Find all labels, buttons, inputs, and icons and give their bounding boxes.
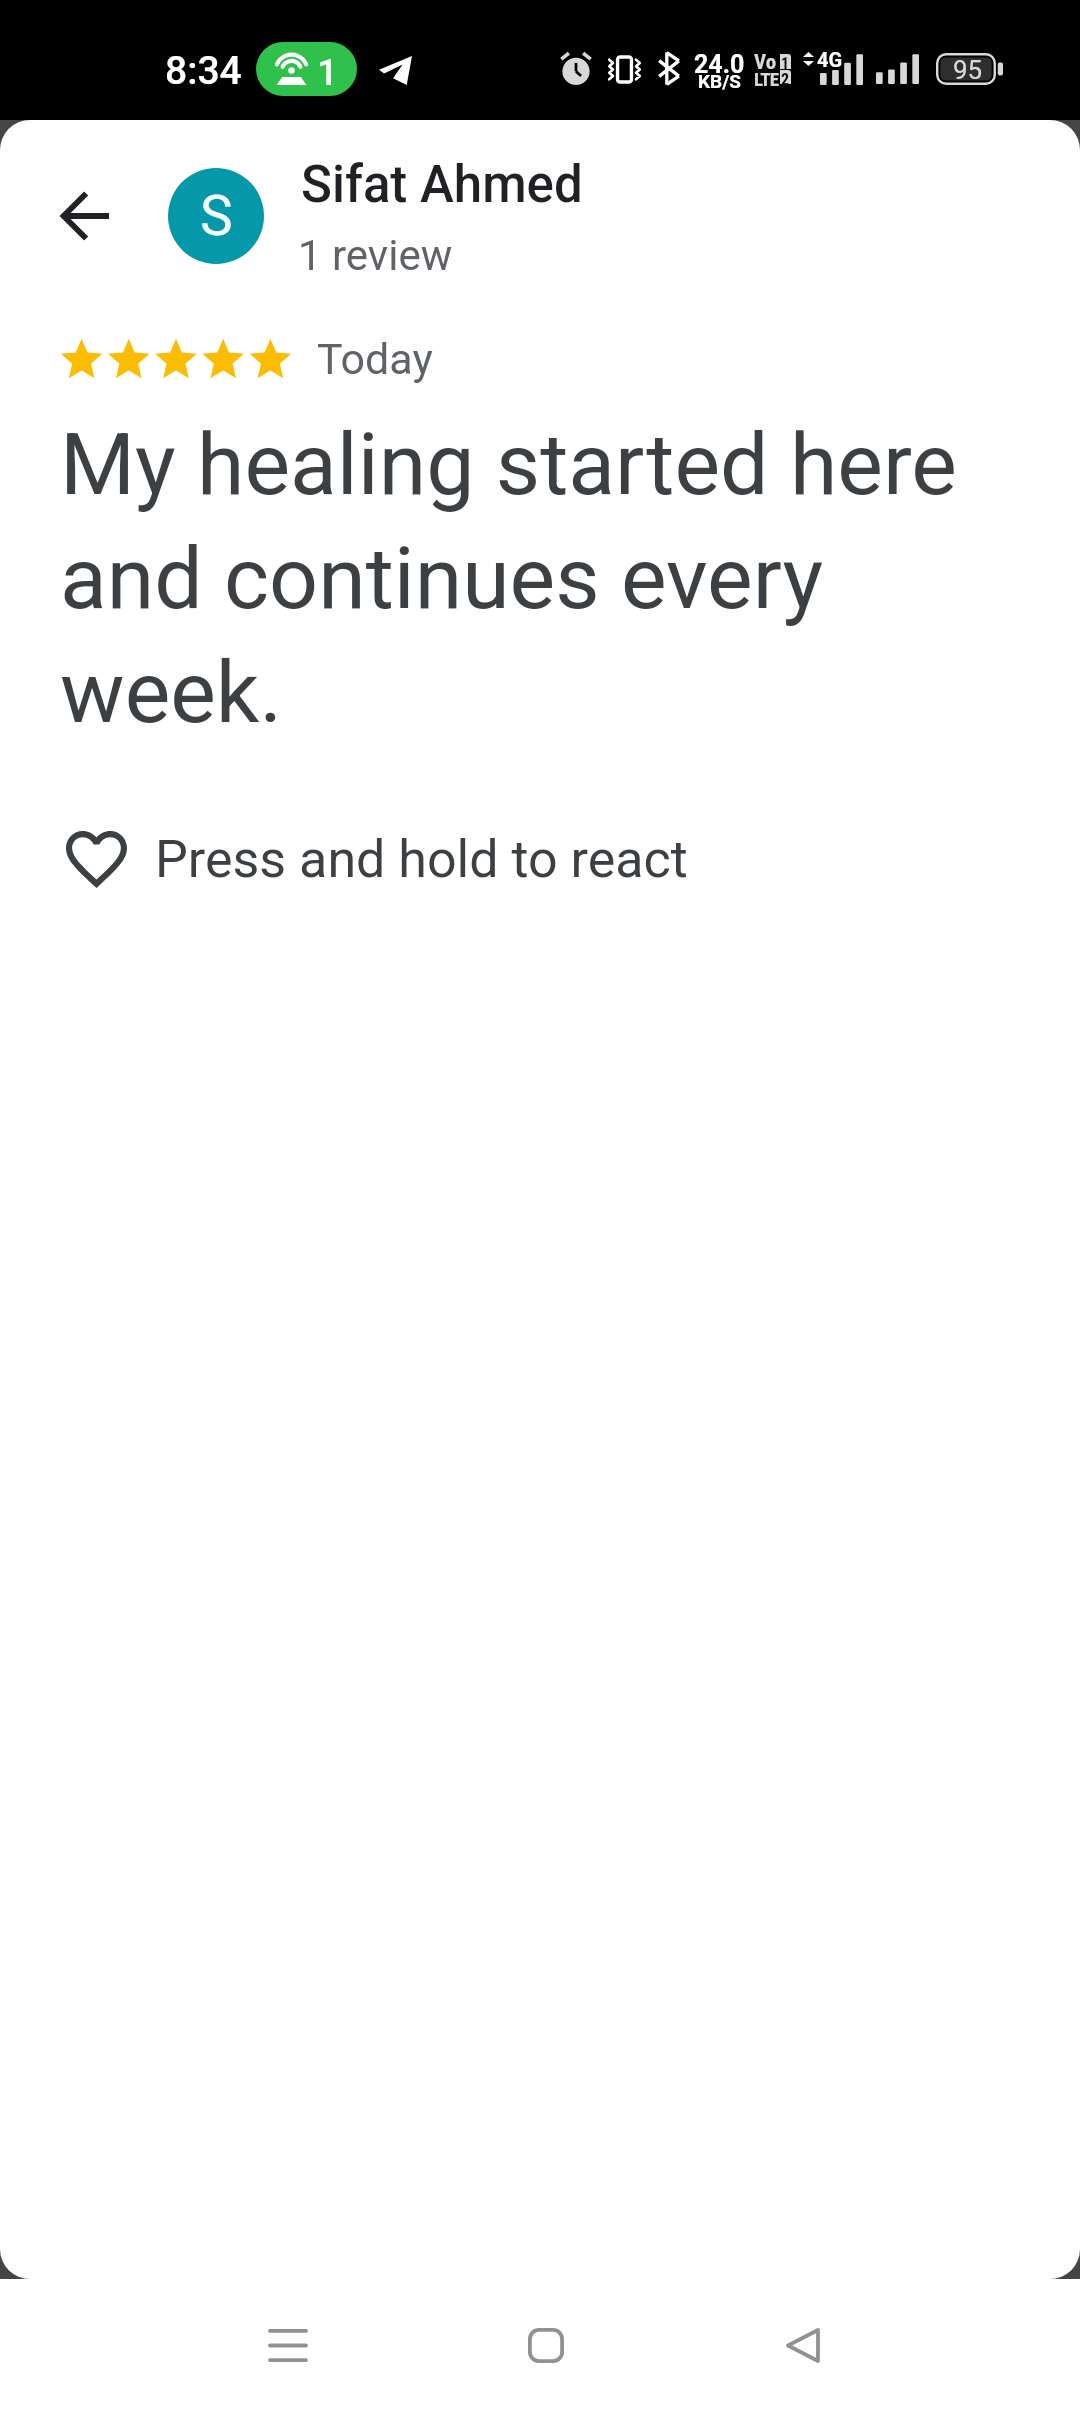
staticText: My healing started here and continues ev… — [60, 414, 957, 743]
staticText: S — [200, 184, 233, 248]
button[interactable]: Press and hold to react — [30, 792, 730, 912]
staticText: 1 — [781, 54, 790, 69]
staticText: 8:34 — [165, 48, 242, 94]
staticText: 2 — [781, 70, 790, 84]
staticText: 1 — [317, 51, 339, 94]
button[interactable]: Recent apps — [218, 2279, 358, 2412]
staticText: LTE — [754, 68, 779, 90]
button[interactable]: Back — [733, 2279, 873, 2412]
staticText: KB/S — [698, 70, 741, 92]
staticText: Sifat Ahmed — [301, 155, 583, 215]
staticText: Vo — [754, 50, 777, 75]
button[interactable]: Back — [17, 148, 153, 284]
button[interactable]: Home — [476, 2279, 616, 2412]
staticText: 4G — [817, 48, 843, 71]
staticText: 1 review — [298, 231, 453, 280]
staticText: Press and hold to react — [155, 829, 688, 890]
staticText: 24.0 — [694, 50, 745, 79]
staticText: Today — [317, 334, 433, 384]
staticText: 95 — [953, 55, 983, 85]
